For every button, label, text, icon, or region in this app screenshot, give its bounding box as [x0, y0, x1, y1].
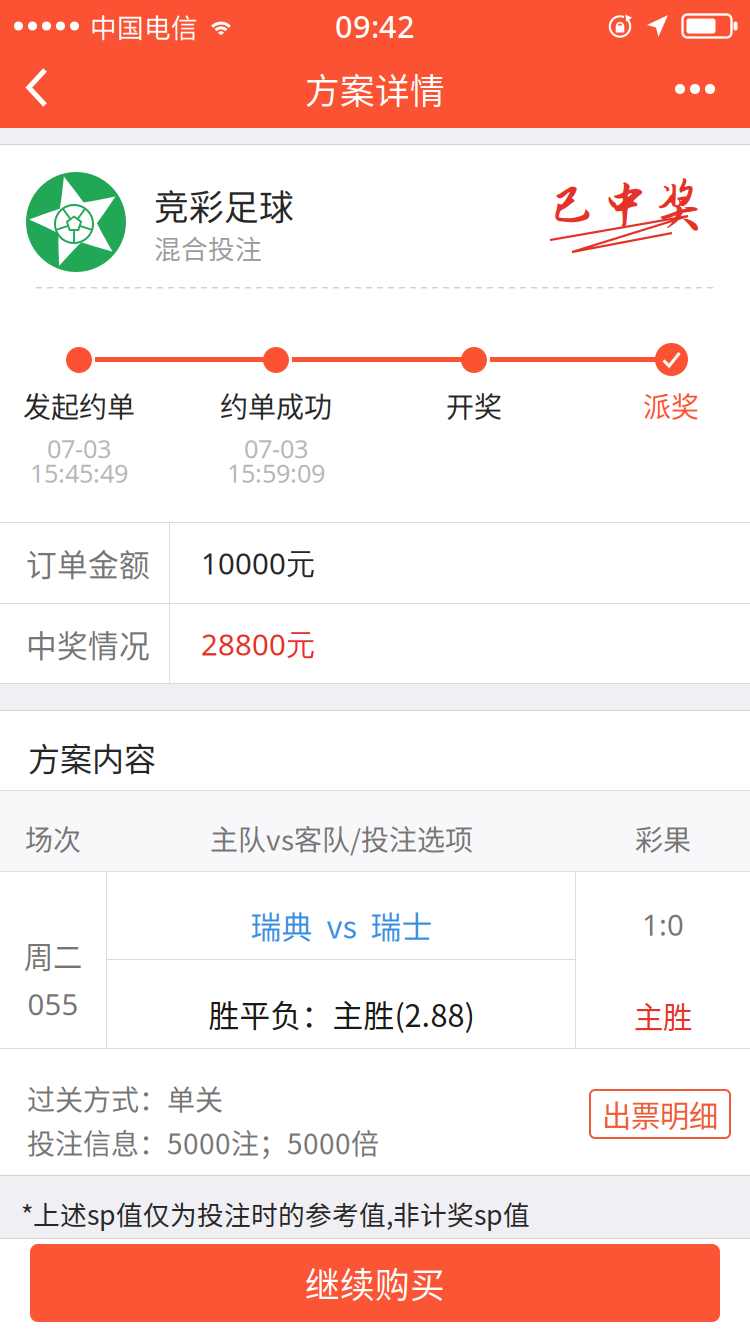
staticText: 出票明细 [602, 1093, 718, 1135]
staticText: 场次 [25, 818, 81, 858]
staticText: 中国电信 [90, 7, 198, 45]
staticText: 方案详情 [305, 64, 445, 114]
staticText: 15:59:09 [227, 456, 325, 490]
staticText: 周二 [24, 934, 82, 976]
staticText: 28800元 [201, 624, 315, 663]
staticText: 发起约单 [23, 385, 135, 425]
button[interactable]: 继续购买 [30, 1244, 720, 1322]
staticText: 开奖 [446, 385, 502, 425]
staticText: 中奖情况 [26, 622, 150, 666]
staticText: 方案内容 [28, 734, 156, 780]
staticText: 竞彩足球 [154, 180, 294, 230]
staticText: 约单成功 [220, 385, 332, 425]
staticText: 瑞典 vs 瑞士 [250, 903, 432, 947]
staticText: 派奖 [643, 385, 699, 425]
button[interactable]: More options [635, 52, 750, 126]
staticText: 10000元 [201, 543, 315, 582]
staticText: 继续购买 [305, 1258, 445, 1308]
staticText: 过关方式：单关 [27, 1078, 223, 1118]
staticText: 09:42 [335, 6, 415, 46]
staticText: 1:0 [642, 905, 684, 944]
staticText: 主胜 [634, 994, 692, 1036]
button[interactable]: 出票明细 [590, 1090, 730, 1138]
staticText: 15:45:49 [30, 456, 128, 490]
staticText: *上述sp值仅为投注时的参考值,非计奖sp值 [21, 1194, 530, 1233]
staticText: 07-03 [47, 431, 111, 465]
staticText: 055 [27, 984, 78, 1023]
button[interactable]: Back [0, 52, 81, 126]
staticText: 彩果 [635, 818, 691, 858]
staticText: 主队vs客队/投注选项 [210, 818, 473, 858]
staticText: 混合投注 [154, 228, 262, 267]
staticText: 07-03 [244, 431, 308, 465]
staticText: 胜平负：主胜(2.88) [208, 992, 474, 1035]
staticText: 已中奖 [546, 176, 705, 235]
staticText: 投注信息：5000注；5000倍 [27, 1122, 379, 1162]
staticText: 订单金额 [26, 541, 150, 585]
